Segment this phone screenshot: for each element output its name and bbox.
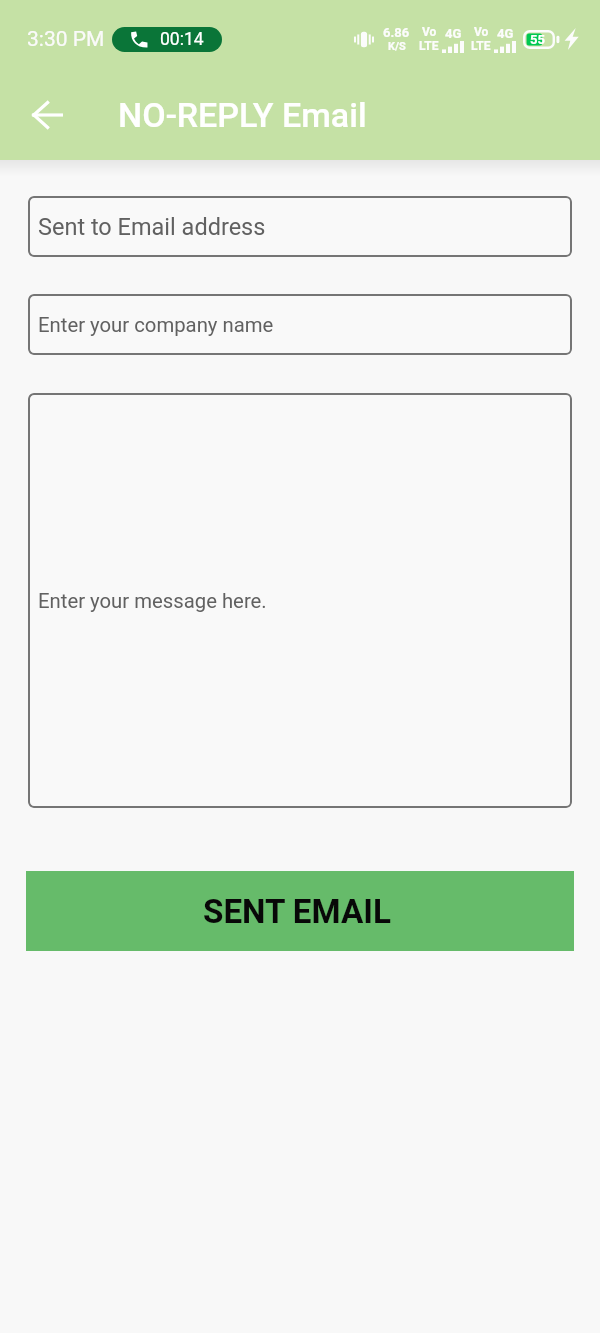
staticText: Sent to Email address	[38, 213, 266, 241]
staticText: Vo	[422, 25, 437, 39]
staticText: K/S	[388, 40, 406, 53]
staticText: LTE	[419, 39, 439, 53]
staticText: NO-REPLY Email	[118, 95, 367, 135]
staticText: 00:14	[160, 29, 204, 50]
button[interactable]: Enter your message here.	[28, 393, 572, 808]
button[interactable]: Sent to Email address	[28, 196, 572, 257]
button[interactable]: Enter your company name	[28, 294, 572, 355]
staticText: 4G	[497, 26, 514, 41]
button[interactable]: SENT EMAIL	[26, 871, 574, 951]
staticText: SENT EMAIL	[203, 892, 391, 931]
button[interactable]: Back	[0, 78, 94, 152]
staticText: Enter your company name	[38, 313, 274, 337]
staticText: Vo	[474, 25, 489, 39]
staticText: 6.86	[383, 25, 410, 40]
staticText: 4G	[445, 26, 462, 41]
staticText: Enter your message here.	[38, 589, 267, 613]
staticText: 55	[530, 32, 545, 47]
staticText: 3:30 PM	[27, 27, 105, 52]
staticText: LTE	[471, 39, 491, 53]
